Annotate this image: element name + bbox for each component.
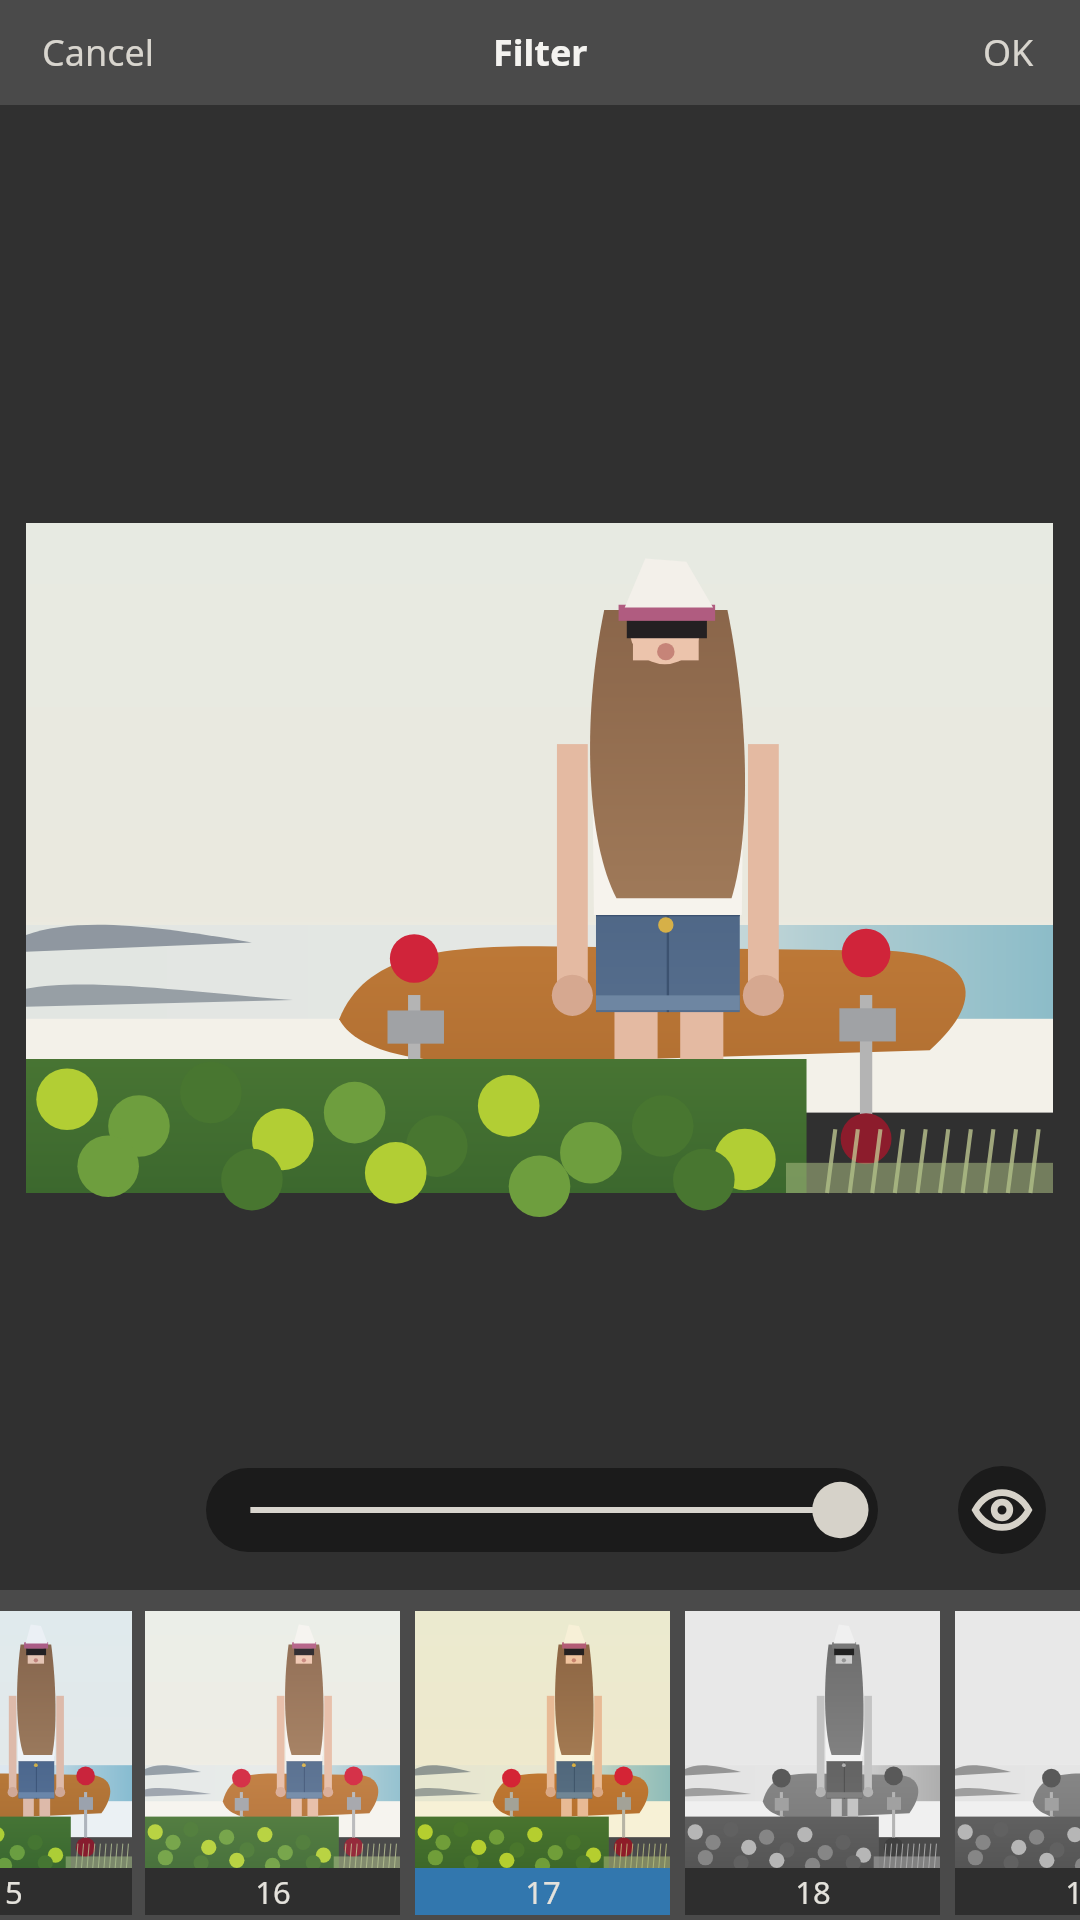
button[interactable]: Filter strength slider <box>206 1468 878 1552</box>
button[interactable]: 16 <box>145 1611 400 1915</box>
button[interactable]: OK <box>957 6 1080 99</box>
staticText: 18 <box>795 1871 831 1913</box>
staticText: 16 <box>255 1871 291 1913</box>
staticText: OK <box>983 28 1034 77</box>
button[interactable]: Cancel <box>0 6 181 99</box>
staticText: 15 <box>0 1871 23 1913</box>
button[interactable]: 15 <box>0 1611 132 1915</box>
staticText: Cancel <box>42 28 155 77</box>
button[interactable]: Compare with original <box>958 1466 1046 1554</box>
button[interactable]: 18 <box>685 1611 940 1915</box>
staticText: 19 <box>1065 1871 1080 1913</box>
button[interactable]: 17 <box>415 1611 670 1915</box>
staticText: Filter <box>493 28 588 77</box>
staticText: 17 <box>525 1871 561 1913</box>
button[interactable]: 19 <box>955 1611 1080 1915</box>
